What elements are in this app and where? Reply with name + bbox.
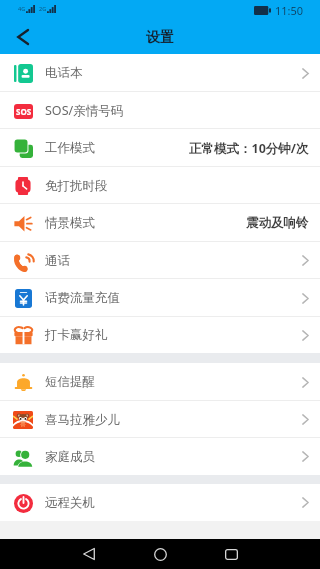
staticText: 喜马拉雅少儿 [45,412,120,428]
staticText: 2G [39,5,47,12]
staticText: 震动及响铃 [246,215,309,231]
staticText: 正常模式：10分钟/次 [189,140,309,157]
staticText: SOS/亲情号码 [45,102,124,119]
button[interactable]: 打卡赢好礼 [0,317,320,353]
staticText: 4G [18,5,26,12]
staticText: SOS [16,106,32,117]
button[interactable]: Back [74,539,104,569]
staticText: 情景模式 [45,215,95,231]
staticText: 打卡赢好礼 [45,327,108,343]
button[interactable]: 免打扰时段 [0,167,320,204]
staticText: 家庭成员 [45,449,95,465]
button[interactable]: 通话 [0,242,320,279]
button[interactable]: Back [0,20,45,54]
button[interactable]: Home [145,539,175,569]
staticText: 话费流量充值 [45,290,120,306]
button[interactable]: 电话本 [0,54,320,92]
staticText: 短信提醒 [45,374,95,390]
button[interactable]: 喜 [0,401,320,438]
button[interactable]: 远程关机 [0,484,320,521]
staticText: 通话 [45,253,70,269]
button[interactable]: 短信提醒 [0,363,320,401]
button[interactable]: SOS [0,92,320,129]
button[interactable]: 情景模式 [0,204,320,242]
staticText: 远程关机 [45,495,95,511]
staticText: 电话本 [45,65,83,81]
staticText: 免打扰时段 [45,178,108,194]
staticText: 喜 [20,420,26,428]
staticText: 工作模式 [45,140,95,156]
button[interactable]: 话费流量充值 [0,279,320,317]
staticText: 11:50 [275,3,304,18]
button[interactable]: 家庭成员 [0,438,320,475]
staticText: 设置 [146,29,174,47]
button[interactable]: 工作模式 [0,129,320,167]
button[interactable]: Recents [216,539,246,569]
